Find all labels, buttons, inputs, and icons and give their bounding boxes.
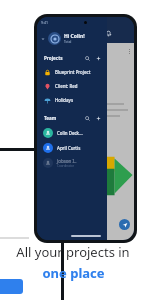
staticText: Blueprint Project bbox=[55, 69, 91, 75]
button[interactable]: April Curtis bbox=[37, 140, 107, 155]
button[interactable]: Colin Deck... bbox=[37, 125, 107, 140]
staticText: Team bbox=[44, 115, 57, 121]
staticText: 9:41 bbox=[41, 20, 48, 25]
button[interactable]: Search Team bbox=[83, 114, 91, 122]
staticText: April Curtis bbox=[57, 145, 81, 151]
staticText: Total bbox=[64, 40, 72, 44]
button[interactable]: Holidays bbox=[37, 93, 107, 107]
button[interactable]: Blueprint Project bbox=[37, 65, 107, 79]
button[interactable]: Jobson I.. bbox=[37, 155, 107, 170]
staticText: Holidays bbox=[55, 97, 74, 103]
staticText: one place bbox=[42, 264, 105, 282]
staticText: All your projects in bbox=[16, 243, 130, 261]
button[interactable]: Compose bbox=[119, 219, 130, 230]
button[interactable]: Add to Projects bbox=[94, 54, 102, 62]
button[interactable]: Notifications bbox=[104, 29, 113, 38]
button[interactable]: Add to Team bbox=[94, 114, 102, 122]
button[interactable] bbox=[0, 279, 23, 294]
staticText: Hi Colin! bbox=[64, 33, 85, 40]
button[interactable]: Search Projects bbox=[83, 54, 91, 62]
button[interactable]: Hi Colin! bbox=[37, 30, 107, 47]
staticText: Client: Red bbox=[55, 83, 78, 89]
staticText: Coordinator bbox=[57, 164, 74, 168]
button[interactable]: Client: Red bbox=[37, 79, 107, 93]
staticText: Jobson I.. bbox=[57, 158, 77, 164]
staticText: Projects bbox=[44, 55, 63, 61]
staticText: Colin Deck... bbox=[57, 130, 83, 136]
